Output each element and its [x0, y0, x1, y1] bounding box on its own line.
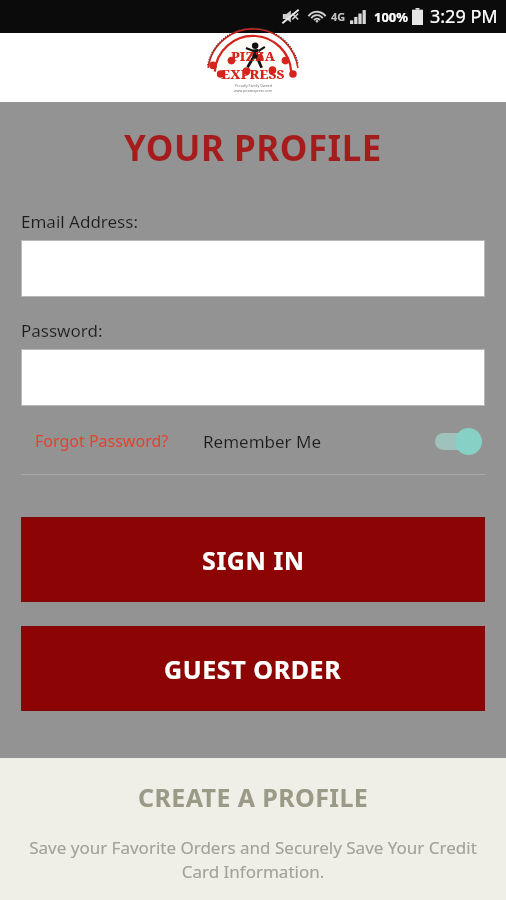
staticText: 100% — [374, 8, 409, 26]
staticText: PIZZA EXPRESS — [199, 47, 307, 83]
staticText: 3:29 PM — [430, 4, 498, 29]
staticText: CREATE A PROFILE — [138, 780, 369, 814]
staticText: Forgot Password? — [35, 430, 169, 452]
staticText: GUEST ORDER — [164, 652, 342, 686]
staticText: 4G — [331, 9, 346, 24]
button[interactable]: Remember Me toggle — [431, 425, 485, 457]
staticText: Email Address: — [21, 210, 138, 233]
staticText: Remember Me — [203, 430, 322, 453]
staticText: www.pizzaexpress.com — [234, 88, 272, 93]
button[interactable]: CREATE A PROFILE — [0, 758, 506, 900]
staticText: Password: — [21, 319, 103, 342]
button[interactable]: SIGN IN — [22, 518, 484, 601]
button[interactable]: Forgot Password? — [21, 424, 183, 458]
button[interactable]: GUEST ORDER — [22, 627, 484, 710]
staticText: Proudly Family Owned — [235, 83, 272, 88]
staticText: YOUR PROFILE — [0, 124, 506, 172]
staticText: SIGN IN — [202, 543, 305, 577]
staticText: Save your Favorite Orders and Securely S… — [26, 836, 480, 883]
